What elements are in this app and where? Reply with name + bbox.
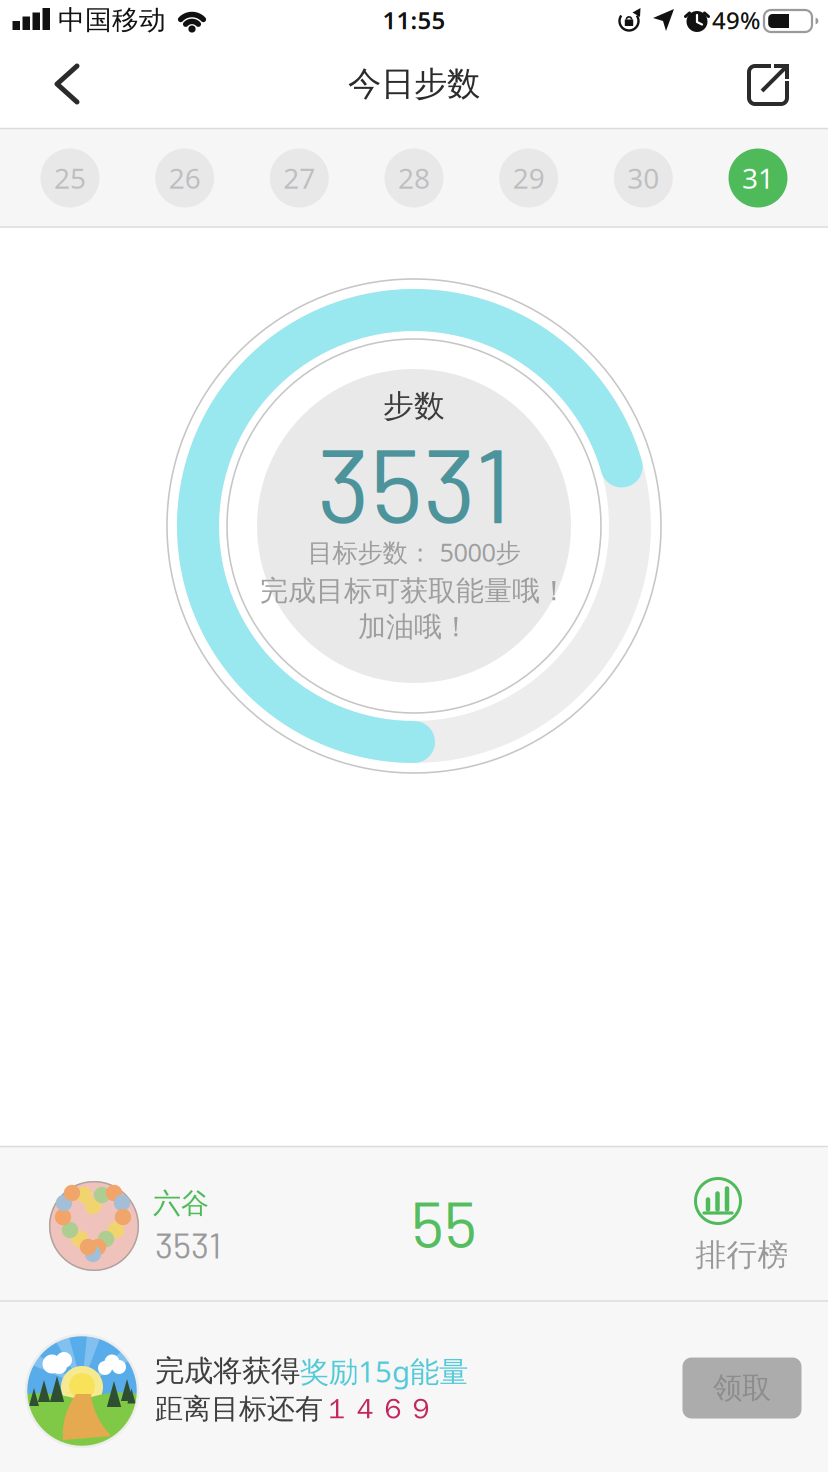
staticText: 28 <box>398 159 430 197</box>
button[interactable]: 29 <box>499 148 558 207</box>
staticText: 步数 <box>383 387 445 425</box>
button[interactable]: 26 <box>155 148 214 207</box>
staticText: 26 <box>169 159 201 197</box>
staticText: 完成目标可获取能量哦！ <box>260 574 568 608</box>
staticText: 领取 <box>713 1370 771 1406</box>
staticText: 30 <box>627 159 659 197</box>
button[interactable]: Back <box>45 62 89 106</box>
staticText: １４６９ <box>323 1392 435 1426</box>
button[interactable]: 30 <box>614 148 673 207</box>
staticText: 六谷 <box>153 1186 209 1221</box>
staticText: 排行榜 <box>695 1236 788 1274</box>
button[interactable]: 27 <box>270 148 329 207</box>
staticText: 3531 <box>155 1223 221 1265</box>
staticText: 目标步数： 5000步 <box>307 535 520 569</box>
staticText: 55 <box>411 1184 477 1260</box>
button[interactable]: 28 <box>384 148 443 207</box>
button[interactable]: 25 <box>40 148 99 207</box>
button[interactable]: 排行榜 <box>671 1174 795 1280</box>
staticText: 完成将获得 <box>155 1353 300 1389</box>
staticText: 中国移动 <box>58 4 166 36</box>
button[interactable]: 领取 <box>682 1357 801 1418</box>
staticText: 3531 <box>317 420 511 544</box>
staticText: 11:55 <box>382 4 445 36</box>
staticText: 49% <box>712 4 760 36</box>
staticText: 25 <box>54 159 86 197</box>
staticText: 距离目标还有 <box>155 1392 323 1426</box>
button[interactable]: Share <box>743 58 793 108</box>
staticText: 奖励15g能量 <box>300 1351 468 1390</box>
staticText: 31 <box>742 159 774 197</box>
button[interactable]: 31 <box>728 148 787 207</box>
staticText: 加油哦！ <box>358 610 470 644</box>
staticText: 27 <box>283 159 315 197</box>
staticText: 今日步数 <box>348 63 480 104</box>
staticText: 29 <box>513 159 545 197</box>
